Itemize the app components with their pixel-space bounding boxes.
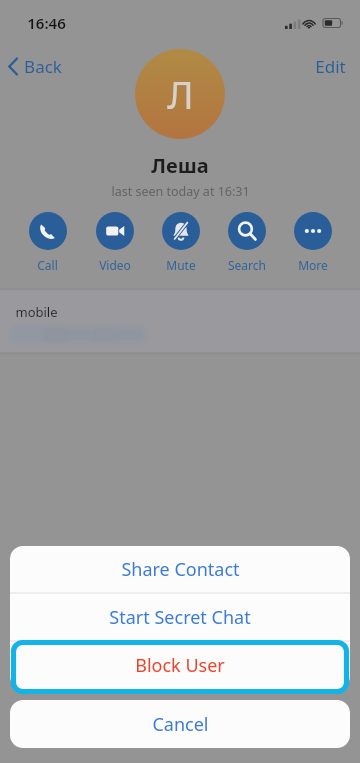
button[interactable]: Video (81, 208, 148, 277)
staticText: Search (228, 257, 266, 273)
staticText: Back (24, 55, 62, 78)
staticText: Mute (166, 257, 196, 273)
staticText: last seen today at 16:31 (111, 183, 250, 200)
other: Call (29, 212, 67, 250)
other: More (294, 212, 332, 250)
staticText: Start Secret Chat (109, 605, 251, 630)
staticText: Video (99, 257, 131, 273)
staticText: 16:46 (27, 13, 66, 33)
button[interactable]: Share Contact (10, 546, 350, 593)
button[interactable]: Block User (10, 642, 350, 689)
staticText: Call (37, 257, 58, 273)
button[interactable]: Start Secret Chat (10, 594, 350, 641)
button[interactable]: Cancel (10, 700, 350, 748)
other: Mute (162, 212, 200, 250)
staticText: mobile (15, 303, 58, 321)
staticText: Share Contact (121, 557, 240, 582)
button[interactable]: Call (14, 208, 81, 277)
button[interactable]: Edit (301, 49, 360, 84)
button[interactable]: More (280, 208, 346, 277)
staticText: Леша (151, 152, 209, 179)
staticText: Edit (315, 55, 346, 78)
other: Video (96, 212, 134, 250)
button[interactable]: Search (214, 208, 280, 277)
staticText: More (298, 257, 328, 273)
staticText: Л (167, 68, 194, 120)
button[interactable]: Mute (148, 208, 214, 277)
staticText: Block User (135, 653, 225, 678)
staticText: Cancel (152, 712, 209, 737)
other: Search (228, 212, 266, 250)
button[interactable]: Back (0, 51, 72, 82)
